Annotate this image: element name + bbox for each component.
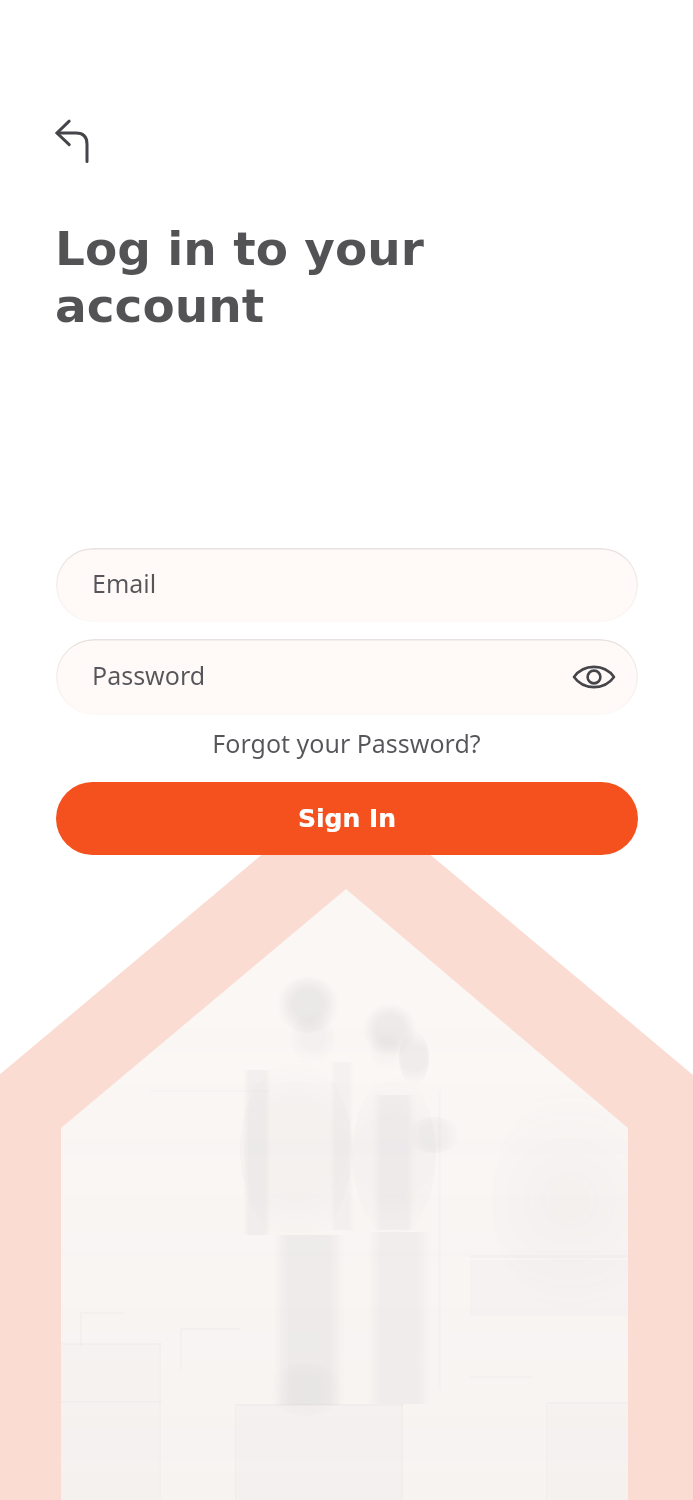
staticText: Password [92,658,206,692]
staticText: Sign In [298,804,397,833]
staticText: Email [92,566,157,600]
button[interactable]: Password [56,639,638,715]
staticText: Log in to your account [55,221,424,333]
button[interactable]: Show password [568,651,620,703]
button[interactable]: Email [56,548,638,622]
button[interactable]: Back [55,114,111,170]
button[interactable]: Forgot your Password? [212,726,481,760]
button[interactable]: Sign In [56,782,638,855]
